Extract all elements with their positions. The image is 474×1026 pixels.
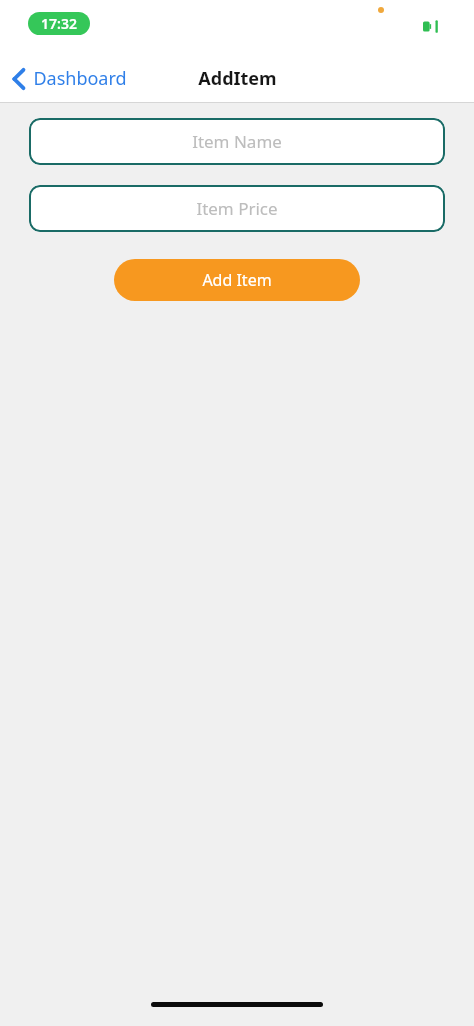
staticText: Item Price bbox=[196, 197, 278, 220]
staticText: Dashboard bbox=[33, 66, 127, 91]
staticText: Item Name bbox=[192, 130, 282, 153]
staticText: 17:32 bbox=[41, 14, 77, 33]
staticText: Add Item bbox=[202, 269, 272, 291]
button[interactable]: Dashboard bbox=[0, 62, 137, 95]
staticText: AddItem bbox=[198, 66, 277, 91]
button[interactable]: Item Price bbox=[29, 185, 445, 232]
button[interactable]: Item Name bbox=[29, 118, 445, 165]
button[interactable]: Add Item bbox=[114, 259, 360, 301]
